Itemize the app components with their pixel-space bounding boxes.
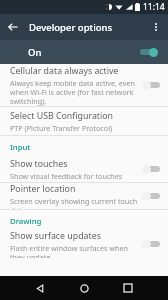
button[interactable]: On (0, 40, 168, 64)
staticText: Show visual feedback for touches (10, 171, 123, 181)
staticText: Show touches (10, 158, 68, 170)
staticText: Developer options (29, 21, 113, 34)
staticText: On (28, 46, 42, 59)
button[interactable]: Show touches (0, 156, 168, 182)
staticText: Drawing (10, 216, 42, 227)
staticText: Show surface updates (10, 230, 101, 242)
button[interactable]: Recent apps (115, 276, 141, 300)
staticText: Screen overlay showing current touch dat… (10, 196, 138, 209)
button[interactable]: Back (27, 276, 53, 300)
button[interactable]: Pointer location (0, 183, 168, 209)
button[interactable]: Back (4, 18, 22, 36)
button[interactable]: More options (147, 18, 165, 36)
staticText: 11:14 (143, 1, 165, 13)
button[interactable]: Select USB Configuration (0, 107, 168, 135)
staticText: Pointer location (10, 183, 76, 195)
staticText: Select USB Configuration (10, 110, 114, 122)
staticText: PTP (Picture Transfer Protocol) (10, 123, 113, 133)
button[interactable]: Home (71, 276, 97, 300)
staticText: Flash entire window surfaces when they u… (10, 243, 138, 258)
button[interactable]: Cellular data always active (0, 64, 168, 106)
staticText: Always keep mobile data active, even whe… (10, 78, 138, 106)
staticText: Input (10, 142, 31, 153)
button[interactable]: Show surface updates (0, 230, 168, 258)
staticText: Cellular data always active (10, 65, 119, 77)
